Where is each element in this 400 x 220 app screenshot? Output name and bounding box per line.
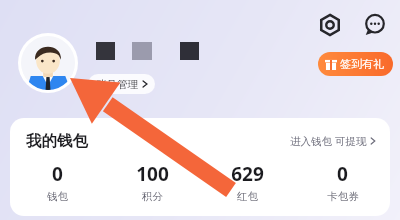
staticText: 签到有礼	[340, 57, 384, 71]
button[interactable]: 0	[10, 161, 105, 203]
staticText: 0	[52, 161, 63, 187]
staticText: 0	[337, 161, 348, 187]
button[interactable]: 100	[105, 161, 200, 203]
staticText: 进入钱包 可提现	[290, 134, 367, 148]
button[interactable]: 消息	[358, 8, 392, 42]
staticText: 积分	[142, 190, 163, 203]
button[interactable]: 头像	[21, 36, 75, 90]
staticText: 账号管理	[96, 78, 138, 91]
button[interactable]: 扫一扫	[313, 8, 347, 42]
staticText: 红包	[237, 190, 258, 203]
button[interactable]: 账号管理	[88, 74, 155, 94]
staticText: 卡包券	[327, 190, 359, 203]
button[interactable]: 我的钱包	[10, 118, 390, 216]
button[interactable]: 签到有礼	[318, 52, 393, 76]
staticText: 我的钱包	[26, 131, 88, 151]
staticText: 100	[136, 161, 169, 187]
button[interactable]: 0	[295, 161, 390, 203]
staticText: 629	[231, 161, 264, 187]
staticText: 钱包	[47, 190, 68, 203]
button[interactable]: 进入钱包 可提现	[290, 134, 376, 148]
button[interactable]: 629	[200, 161, 295, 203]
